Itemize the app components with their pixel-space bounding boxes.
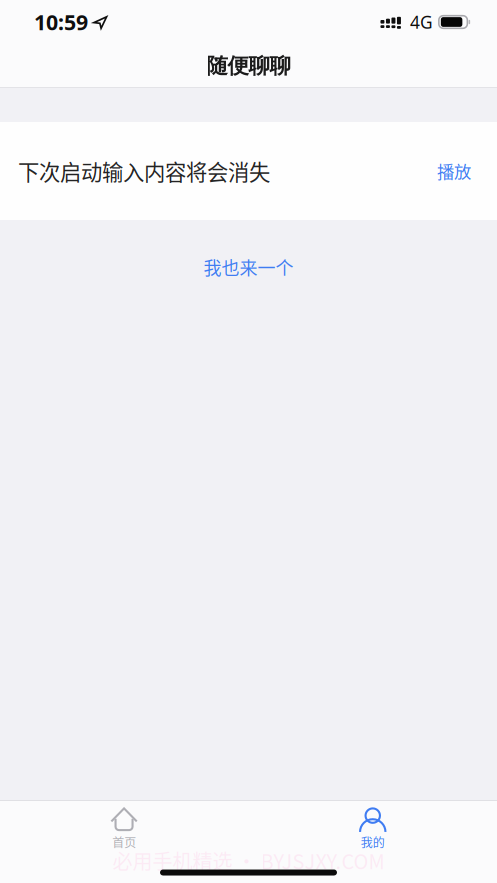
staticText: 首页 [112, 833, 136, 851]
staticText: 10:59 [34, 8, 88, 36]
staticText: 下次启动输入内容将会消失 [18, 156, 270, 186]
button[interactable]: 下次启动输入内容将会消失 [0, 122, 497, 220]
staticText: 随便聊聊 [206, 53, 290, 79]
staticText: 我的 [361, 833, 385, 851]
staticText: 播放 [437, 158, 471, 184]
button[interactable]: 首页 [0, 803, 248, 855]
button[interactable]: 我也来一个 [0, 254, 497, 280]
staticText: 我也来一个 [203, 254, 293, 280]
staticText: 4G [410, 10, 433, 33]
button[interactable]: 我的 [248, 803, 497, 855]
staticText: 必用手机精选 · BYJSJXY.COM [112, 846, 384, 875]
